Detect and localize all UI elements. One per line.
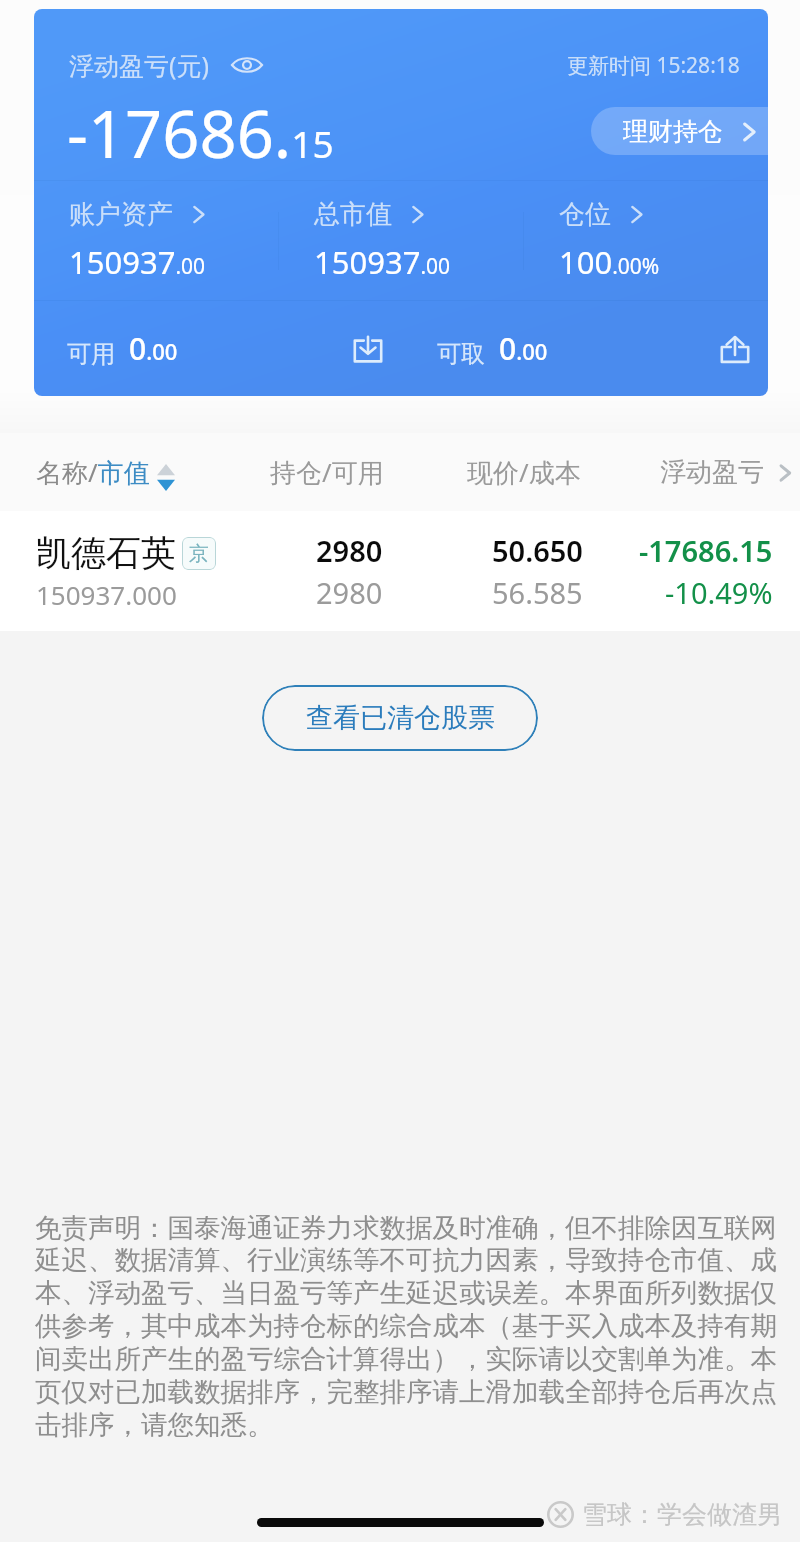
button[interactable]: 账户资产	[34, 181, 278, 300]
button[interactable]: Transfer out	[712, 326, 758, 372]
button[interactable]: 仓位	[524, 181, 768, 300]
staticText: -17686.15	[639, 531, 773, 570]
staticText: -10.49%	[665, 573, 773, 612]
staticText: 免责声明：国泰海通证券力求数据及时准确，但不排除因互联网延迟、数据清算、行业演练…	[35, 1211, 792, 1442]
staticText: 150937.00	[314, 241, 451, 283]
staticText: 理财持仓	[623, 116, 723, 147]
button[interactable]: 查看已清仓股票	[262, 685, 538, 751]
staticText: 持仓/可用	[270, 454, 384, 490]
staticText: 150937.00	[69, 241, 206, 283]
staticText: 2980	[316, 573, 383, 612]
staticText: 0.00	[499, 328, 548, 369]
button[interactable]: 理财持仓	[591, 107, 768, 155]
button[interactable]: 浮动盈亏	[660, 456, 794, 489]
staticText: 56.585	[492, 573, 583, 612]
staticText: 可取	[437, 339, 485, 369]
staticText: 可用	[67, 339, 115, 369]
staticText: 京	[189, 541, 209, 566]
staticText: 名称/市值	[36, 454, 150, 490]
staticText: 雪球：学会做渣男	[582, 1499, 782, 1530]
staticText: 总市值	[314, 198, 392, 231]
button[interactable]: Transfer in	[345, 326, 391, 372]
staticText: 账户资产	[69, 198, 173, 231]
staticText: 100.00%	[559, 241, 660, 283]
button[interactable]: 总市值	[279, 181, 523, 300]
staticText: 凯德石英	[36, 531, 176, 575]
button[interactable]: Toggle amount visibility	[230, 48, 264, 82]
button[interactable]: 名称/市值	[36, 454, 175, 490]
staticText: 2980	[316, 531, 383, 570]
staticText: 现价/成本	[467, 454, 581, 490]
staticText: 浮动盈亏	[660, 456, 764, 489]
staticText: 更新时间 15:28:18	[567, 51, 740, 80]
staticText: 50.650	[492, 531, 583, 570]
staticText: 0.00	[129, 328, 178, 369]
button[interactable]: 凯德石英	[0, 511, 800, 631]
staticText: 浮动盈亏(元)	[69, 48, 210, 82]
staticText: 查看已清仓股票	[306, 701, 495, 735]
staticText: -17686.15	[67, 89, 334, 178]
staticText: 仓位	[559, 198, 611, 231]
staticText: 150937.000	[36, 577, 177, 612]
